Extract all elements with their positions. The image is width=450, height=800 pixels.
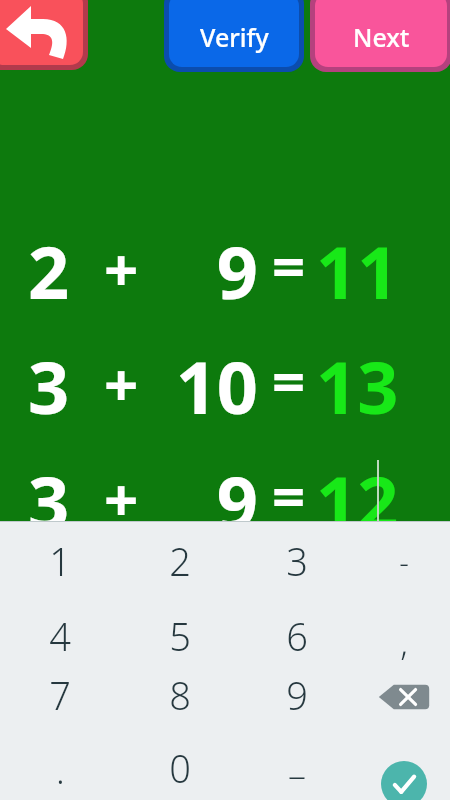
- button[interactable]: 2: [0, 222, 450, 302]
- staticText: 3: [28, 337, 70, 417]
- staticText: 1: [49, 535, 71, 587]
- staticText: Next: [353, 20, 410, 54]
- staticText: 2: [28, 222, 70, 302]
- button[interactable]: 0: [140, 740, 220, 796]
- button[interactable]: 3: [0, 337, 450, 417]
- button[interactable]: 1: [20, 533, 100, 589]
- button[interactable]: 9: [257, 667, 337, 723]
- staticText: 9: [148, 222, 258, 302]
- staticText: 11: [316, 222, 399, 302]
- staticText: =: [272, 456, 306, 535]
- staticText: 9: [286, 669, 308, 721]
- button[interactable]: Confirm: [381, 761, 427, 800]
- staticText: ,: [400, 619, 408, 665]
- button[interactable]: 2: [140, 533, 220, 589]
- staticText: _: [289, 736, 305, 785]
- staticText: 5: [169, 610, 191, 662]
- button[interactable]: Back: [0, 0, 83, 65]
- staticText: 3: [28, 452, 70, 532]
- staticText: +: [104, 458, 139, 538]
- button[interactable]: 3: [257, 533, 337, 589]
- button[interactable]: 5: [140, 608, 220, 664]
- button[interactable]: -: [364, 533, 444, 589]
- staticText: -: [399, 541, 409, 582]
- button[interactable]: 4: [20, 608, 100, 664]
- button[interactable]: 7: [20, 667, 100, 723]
- button[interactable]: Next: [315, 0, 447, 67]
- staticText: 9: [148, 452, 258, 532]
- staticText: +: [104, 228, 139, 308]
- staticText: 0: [169, 742, 191, 794]
- staticText: 2: [169, 535, 191, 587]
- staticText: 4: [49, 610, 71, 662]
- button[interactable]: Verify: [169, 0, 299, 67]
- staticText: .: [56, 746, 65, 795]
- button[interactable]: 8: [140, 667, 220, 723]
- staticText: 10: [148, 337, 258, 417]
- button[interactable]: _: [257, 732, 337, 788]
- staticText: 12: [316, 452, 399, 532]
- button[interactable]: 6: [257, 608, 337, 664]
- staticText: 7: [49, 669, 71, 721]
- staticText: Verify: [200, 20, 269, 54]
- staticText: 6: [286, 610, 308, 662]
- staticText: 13: [316, 337, 399, 417]
- staticText: =: [272, 341, 306, 420]
- button[interactable]: ,: [364, 614, 444, 670]
- button[interactable]: Backspace: [370, 675, 438, 719]
- button[interactable]: 3: [0, 452, 450, 532]
- button[interactable]: .: [20, 742, 100, 798]
- staticText: =: [272, 226, 306, 305]
- staticText: 8: [169, 669, 191, 721]
- staticText: 3: [286, 535, 308, 587]
- staticText: +: [104, 343, 139, 423]
